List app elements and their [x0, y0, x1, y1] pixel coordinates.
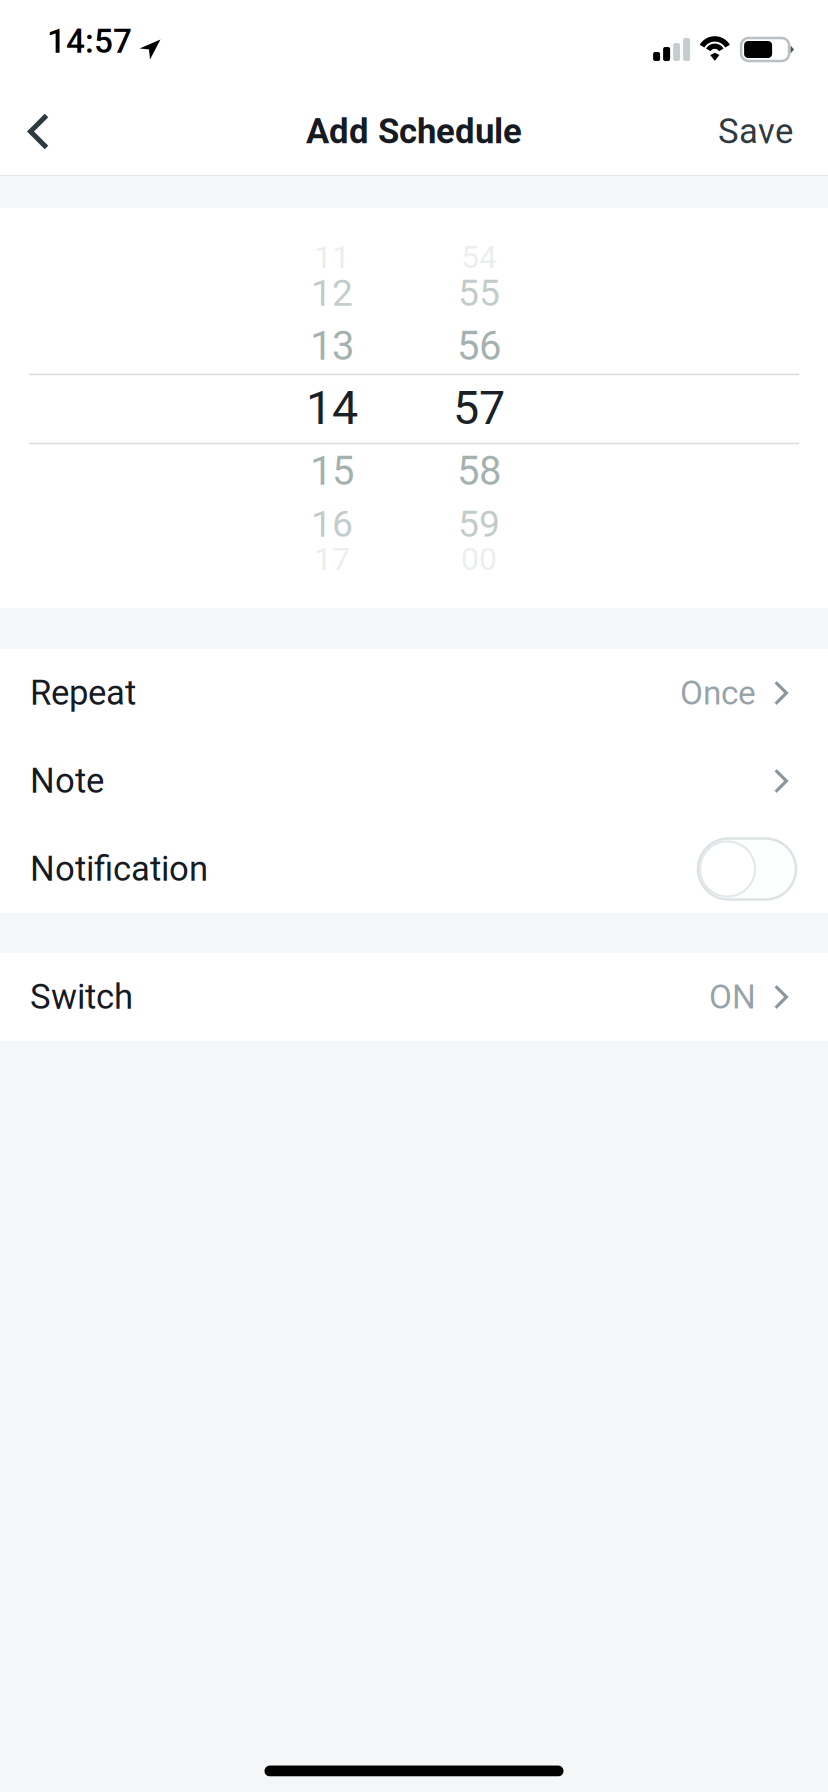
staticText: Notification: [30, 849, 208, 889]
staticText: 00: [461, 540, 497, 578]
staticText: 15: [310, 448, 354, 494]
button[interactable]: Switch: [0, 953, 828, 1041]
staticText: Once: [680, 673, 756, 713]
staticText: Note: [30, 761, 104, 801]
staticText: 14:57: [47, 22, 132, 61]
staticText: 56: [457, 323, 501, 369]
staticText: 11: [314, 238, 350, 276]
button[interactable]: Notification: [0, 825, 828, 913]
staticText: 16: [311, 502, 353, 546]
staticText: 54: [461, 238, 497, 276]
staticText: 17: [314, 540, 350, 578]
staticText: 58: [457, 448, 501, 494]
button[interactable]: Note: [0, 737, 828, 825]
staticText: Save: [718, 111, 793, 152]
staticText: ON: [709, 977, 756, 1017]
staticText: 59: [458, 502, 500, 546]
staticText: 57: [453, 381, 505, 435]
staticText: Switch: [30, 977, 133, 1017]
staticText: Add Schedule: [306, 111, 522, 152]
staticText: Repeat: [30, 673, 136, 713]
button[interactable]: Save: [688, 83, 828, 180]
staticText: 13: [310, 323, 354, 369]
staticText: 14: [306, 381, 358, 435]
staticText: 12: [311, 271, 353, 315]
staticText: 55: [458, 271, 500, 315]
button[interactable]: Repeat: [0, 649, 828, 737]
button[interactable]: Back: [0, 88, 79, 175]
